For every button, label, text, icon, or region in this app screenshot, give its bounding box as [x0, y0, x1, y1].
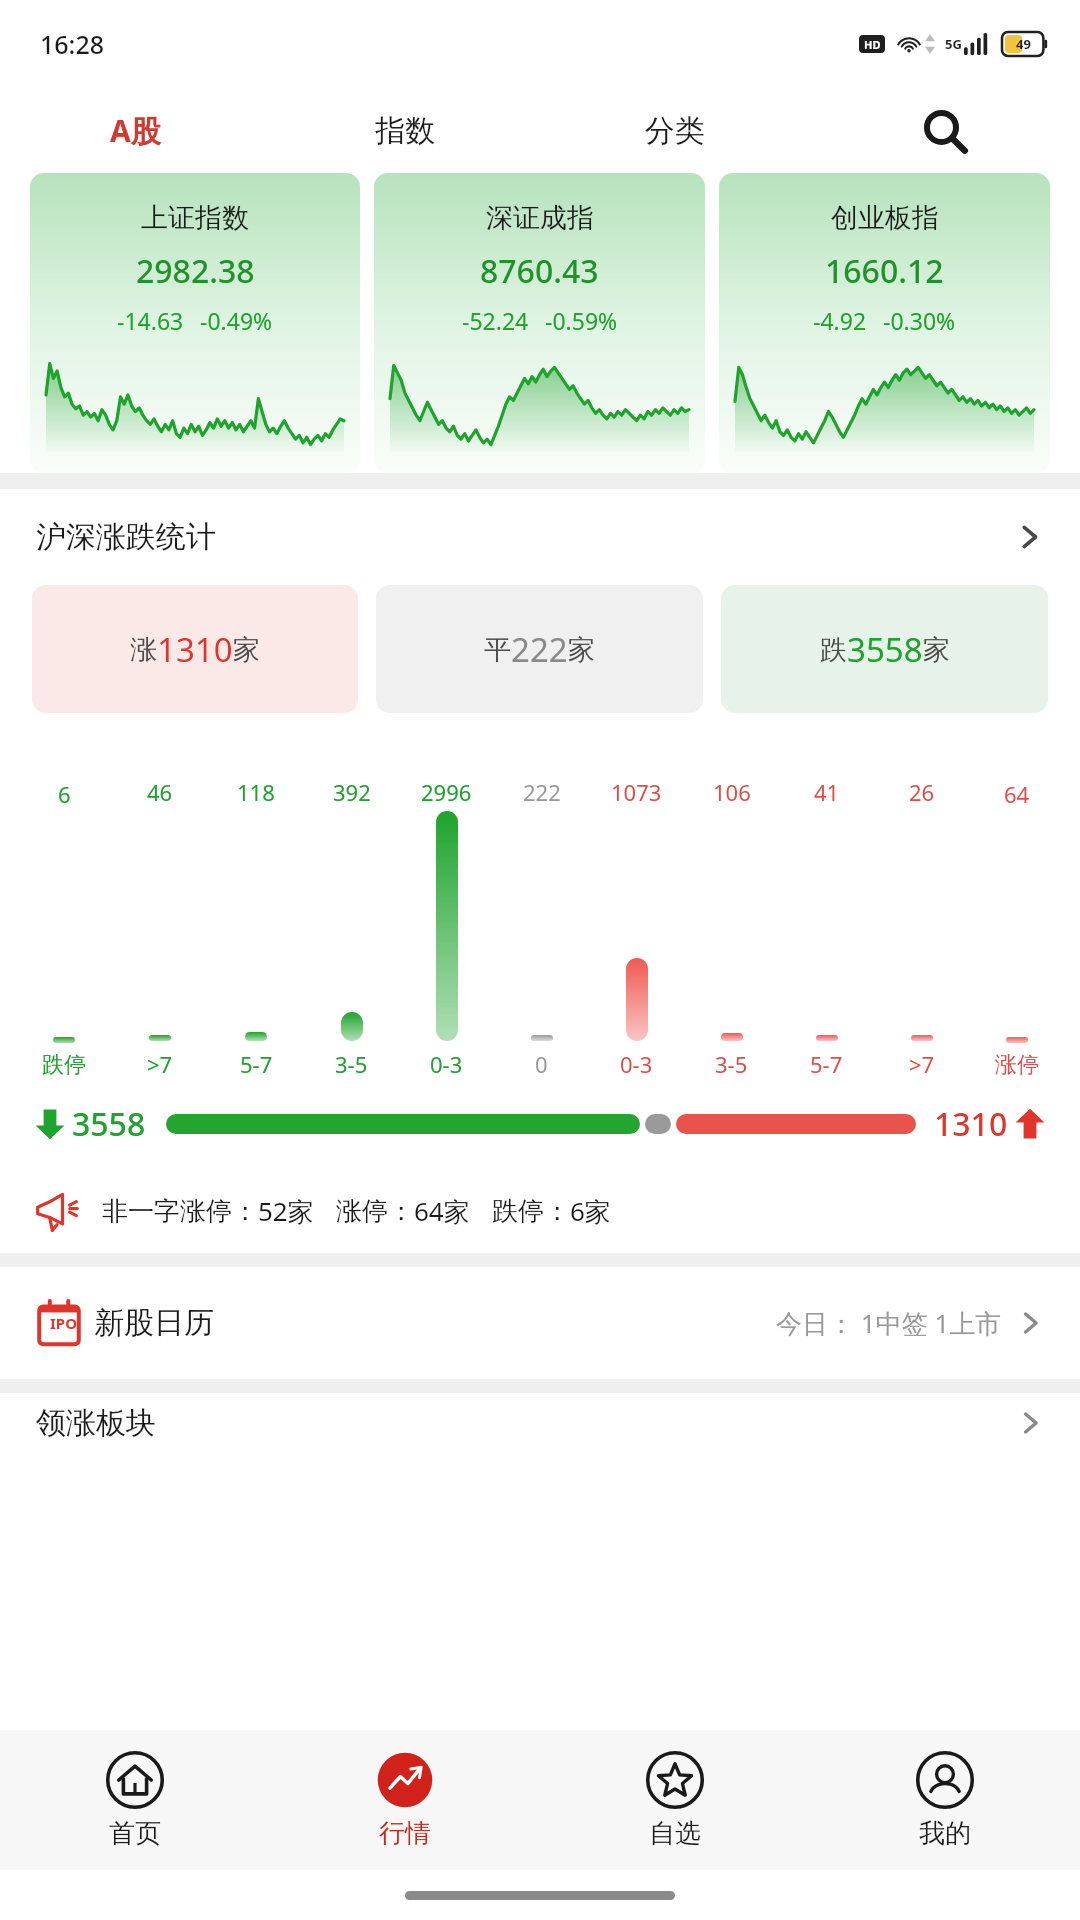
staticText: 64家: [414, 1193, 470, 1229]
staticText: -4.92: [813, 305, 867, 336]
staticText: 新股日历: [94, 1304, 214, 1342]
staticText: 1310: [934, 1102, 1008, 1146]
staticText: 106: [713, 777, 751, 807]
button[interactable]: 6: [16, 779, 112, 1079]
staticText: 自选: [649, 1817, 701, 1850]
staticText: 我的: [919, 1817, 971, 1850]
staticText: 5G: [945, 35, 962, 53]
button[interactable]: 深证成指: [374, 173, 705, 473]
button[interactable]: 1073: [589, 777, 684, 1079]
button[interactable]: 2996: [399, 777, 494, 1079]
button[interactable]: 118: [208, 777, 304, 1079]
button[interactable]: 自选: [540, 1730, 810, 1870]
staticText: 家: [233, 633, 260, 667]
staticText: 0: [535, 1049, 548, 1079]
staticText: A股: [110, 110, 161, 151]
button[interactable]: 行情: [270, 1730, 540, 1870]
staticText: 8760.43: [480, 249, 599, 293]
staticText: 1660.12: [825, 249, 944, 293]
button[interactable]: 跌: [721, 585, 1048, 713]
staticText: 指数: [375, 112, 435, 150]
staticText: 涨停: [995, 1051, 1039, 1079]
button[interactable]: 392: [304, 777, 399, 1079]
staticText: -0.49%: [200, 305, 273, 336]
staticText: 1310: [157, 627, 233, 672]
staticText: 创业板指: [831, 201, 939, 235]
button[interactable]: 上证指数: [30, 173, 360, 473]
staticText: 64: [1004, 779, 1030, 809]
staticText: 222: [523, 777, 561, 807]
button[interactable]: 指数: [270, 88, 540, 173]
staticText: 392: [333, 777, 371, 807]
staticText: 涨: [130, 633, 157, 667]
staticText: 涨停：: [336, 1195, 414, 1228]
staticText: 行情: [379, 1817, 431, 1850]
button[interactable]: 我的: [810, 1730, 1080, 1870]
staticText: 跌停: [42, 1051, 86, 1079]
button[interactable]: A股: [0, 88, 270, 173]
staticText: 0-3: [620, 1049, 653, 1079]
staticText: 3558: [72, 1102, 146, 1146]
button[interactable]: 领涨板块: [0, 1393, 1080, 1453]
staticText: HD: [864, 37, 881, 52]
staticText: 5-7: [810, 1049, 843, 1079]
staticText: 0-3: [430, 1049, 463, 1079]
button[interactable]: 平: [376, 585, 703, 713]
staticText: 今日： 1中签 1上市: [776, 1305, 1002, 1341]
button[interactable]: 46: [112, 777, 208, 1079]
staticText: 领涨板块: [36, 1404, 156, 1442]
staticText: 分类: [645, 112, 705, 150]
staticText: 222: [511, 627, 568, 672]
staticText: 首页: [109, 1817, 161, 1850]
button[interactable]: 222: [494, 777, 589, 1079]
staticText: 5-7: [240, 1049, 273, 1079]
button[interactable]: 分类: [540, 88, 810, 173]
staticText: 平: [484, 633, 511, 667]
staticText: 41: [814, 777, 840, 807]
button[interactable]: 26: [874, 777, 969, 1079]
button[interactable]: 涨: [32, 585, 358, 713]
staticText: IPO: [50, 1313, 78, 1333]
staticText: -0.30%: [883, 305, 956, 336]
staticText: 家: [923, 633, 950, 667]
button[interactable]: 沪深涨跌统计: [0, 489, 1080, 585]
staticText: 3-5: [715, 1049, 748, 1079]
other: 公告: [34, 1188, 80, 1234]
staticText: 2982.38: [136, 249, 255, 293]
staticText: 118: [237, 777, 275, 807]
staticText: 家: [568, 633, 595, 667]
button[interactable]: 41: [779, 777, 874, 1079]
staticText: -0.59%: [545, 305, 618, 336]
button[interactable]: IPO: [0, 1267, 1080, 1379]
staticText: 跌停：: [492, 1195, 570, 1228]
staticText: 跌: [820, 633, 847, 667]
staticText: 沪深涨跌统计: [36, 518, 216, 556]
button[interactable]: 公告: [0, 1169, 1080, 1253]
staticText: 3-5: [335, 1049, 368, 1079]
staticText: 49: [1016, 35, 1031, 53]
staticText: 非一字涨停：: [102, 1195, 258, 1228]
staticText: 52家: [258, 1193, 314, 1229]
button[interactable]: 创业板指: [719, 173, 1050, 473]
button[interactable]: 首页: [0, 1730, 270, 1870]
staticText: 上证指数: [141, 201, 249, 235]
staticText: 16:28: [40, 27, 105, 61]
staticText: 3558: [847, 627, 923, 672]
staticText: 1073: [611, 777, 662, 807]
staticText: 6家: [570, 1193, 611, 1229]
staticText: -52.24: [462, 305, 529, 336]
staticText: 6: [58, 779, 71, 809]
staticText: 46: [147, 777, 173, 807]
button[interactable]: Search: [810, 88, 1080, 173]
staticText: >7: [909, 1049, 935, 1079]
staticText: -14.63: [117, 305, 184, 336]
staticText: >7: [147, 1049, 173, 1079]
staticText: 26: [909, 777, 935, 807]
button[interactable]: 106: [684, 777, 779, 1079]
staticText: 深证成指: [486, 201, 594, 235]
staticText: 2996: [421, 777, 472, 807]
button[interactable]: 64: [969, 779, 1064, 1079]
